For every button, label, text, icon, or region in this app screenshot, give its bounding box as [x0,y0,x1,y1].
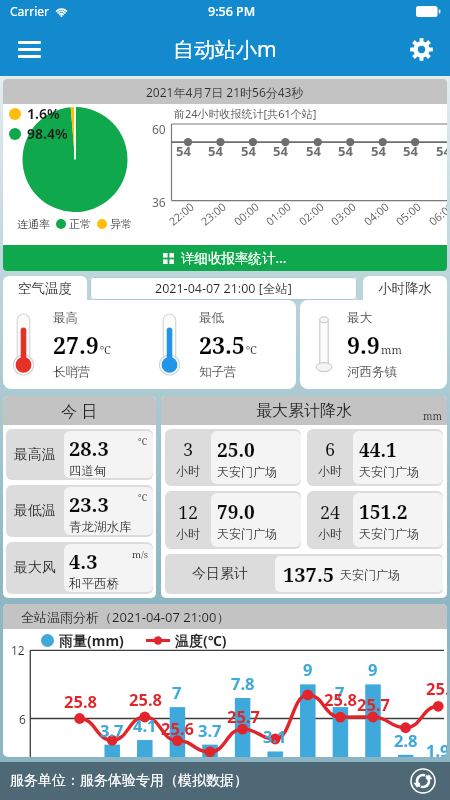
staticText: 今日累计 [192,565,248,583]
staticText: 天安门广场 [359,464,419,479]
staticText: 1.9 [426,739,447,757]
button[interactable]: Refresh [408,766,438,796]
staticText: 河西务镇 [347,364,397,380]
staticText: 06:00 [426,198,447,228]
staticText: 小时 [176,526,200,541]
button[interactable]: 今日累计 [165,554,443,594]
staticText: 4.3 [69,548,98,575]
staticText: 3 [183,437,194,462]
staticText: 25.7 [227,705,260,727]
staticText: 25.7 [357,693,390,715]
staticText: 6 [19,711,26,727]
staticText: 9.9 [347,329,380,360]
staticText: 36 [152,194,166,210]
staticText: 详细收报率统计... [181,249,287,267]
staticText: 异常 [110,217,132,231]
staticText: 9 [368,658,378,680]
staticText: 正常 [69,217,91,231]
staticText: 小时 [176,463,200,478]
button[interactable]: Settings [400,28,442,70]
staticText: 空气温度 [18,280,72,297]
staticText: 1.6% [27,104,60,123]
staticText: 最大累计降水 [256,401,352,421]
staticText: 137.5 [283,561,335,588]
staticText: 天安门广场 [359,526,419,541]
staticText: 54 [176,142,191,160]
staticText: 最高 [53,310,78,326]
staticText: 24 [320,500,341,525]
staticText: 和平西桥 [69,576,119,592]
staticText: 25.8 [64,690,97,712]
staticText: 25.0 [217,437,255,463]
staticText: 3.7 [100,719,124,741]
staticText: ℃ [138,435,148,448]
staticText: 60 [152,121,166,137]
staticText: 54 [241,142,256,160]
staticText: 4.1 [133,714,157,736]
staticText: 23.3 [69,491,109,518]
staticText: 12 [11,642,25,658]
staticText: 天安门广场 [340,567,400,582]
staticText: 9:56 PM [208,3,256,20]
staticText: 自动站小m [173,35,277,64]
staticText: 小时降水 [378,280,432,297]
staticText: 2.8 [394,729,418,751]
staticText: 天安门广场 [217,526,277,541]
staticText: 54 [436,142,447,160]
button[interactable]: 小时降水 [363,276,447,300]
staticText: 今 日 [61,400,98,422]
button[interactable]: 6 [307,429,443,486]
staticText: m/s [132,548,148,561]
staticText: mm [381,342,402,357]
button[interactable]: Menu [8,28,50,70]
staticText: 最低温 [14,502,56,520]
staticText: 54 [371,142,386,160]
staticText: 7 [172,681,182,703]
staticText: 151.2 [359,499,408,525]
button[interactable]: 最低温 [6,485,153,537]
button[interactable]: 空气温度 [3,276,87,300]
staticText: 25. [426,677,447,699]
staticText: 01:00 [263,198,294,228]
staticText: 连通率 [17,217,50,231]
staticText: 3.1 [263,725,287,747]
staticText: 最高温 [14,446,56,464]
button[interactable]: 最大风 [6,542,153,594]
staticText: 6 [325,437,336,462]
staticText: 知子营 [199,364,237,380]
staticText: 23.5 [199,329,245,360]
staticText: 28.3 [69,435,109,462]
staticText: 79.0 [217,499,255,525]
staticText: 54 [306,142,321,160]
staticText: 前24小时收报统计[共61个站] [174,106,317,121]
staticText: 25.6 [161,717,194,739]
staticText: 00:00 [231,198,262,228]
staticText: 54 [273,142,288,160]
staticText: 最低 [199,310,224,326]
button[interactable]: 24 [307,491,443,549]
staticText: 05:00 [393,198,424,228]
button[interactable]: 12 [165,491,301,549]
staticText: 全站温雨分析（2021-04-07 21:00） [21,608,230,626]
staticText: 小时 [318,526,342,541]
staticText: 雨量(mm) [59,631,124,650]
staticText: 25.8 [129,688,162,710]
staticText: 服务单位：服务体验专用（模拟数据） [10,772,248,790]
button[interactable]: 最高温 [6,429,153,480]
staticText: 温度(℃) [175,631,227,650]
staticText: 54 [338,142,353,160]
staticText: 7.8 [231,672,255,694]
staticText: 小时 [318,463,342,478]
staticText: 12 [178,500,199,525]
staticText: 2021-04-07 21:00 [全站] [155,280,292,297]
staticText: ℃ [246,342,257,357]
staticText: 22:00 [166,198,197,228]
button[interactable]: 3 [165,429,301,486]
staticText: 27.9 [53,329,99,360]
staticText: 3.7 [198,719,222,741]
staticText: 最大风 [14,559,56,577]
staticText: 青龙湖水库 [69,519,132,535]
button[interactable]: 详细收报率统计... [3,245,447,271]
staticText: mm [423,409,442,423]
staticText: 7 [335,681,345,703]
